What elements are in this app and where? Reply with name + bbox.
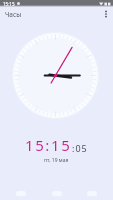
button[interactable] xyxy=(42,181,72,199)
button[interactable] xyxy=(6,181,36,199)
staticText: 15:15 xyxy=(3,1,15,7)
button[interactable]: More options xyxy=(100,8,112,20)
staticText: :05 xyxy=(72,142,88,154)
staticText: 15:15 xyxy=(25,135,72,155)
staticText: пт, 19 мая xyxy=(44,157,69,164)
staticText: Часы xyxy=(5,10,22,19)
button[interactable] xyxy=(77,181,107,199)
